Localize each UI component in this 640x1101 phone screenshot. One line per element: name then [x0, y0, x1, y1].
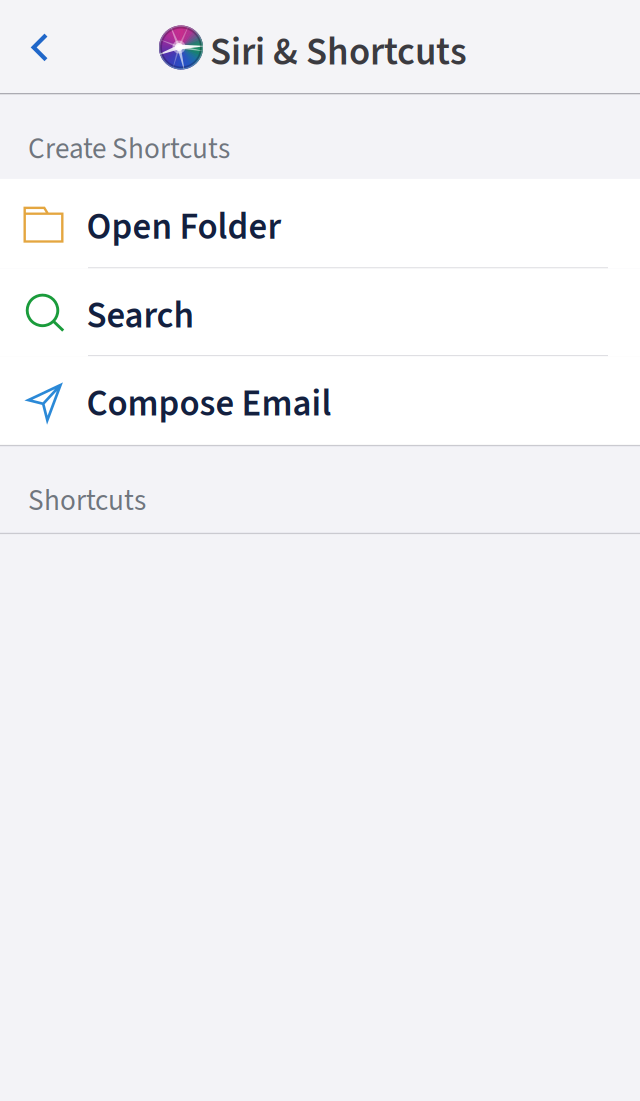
- button[interactable]: Search: [0, 268, 640, 356]
- button[interactable]: Compose Email: [0, 356, 640, 445]
- button[interactable]: Back: [0, 0, 77, 93]
- staticText: Compose Email: [86, 378, 331, 430]
- staticText: Open Folder: [86, 201, 281, 253]
- staticText: Shortcuts: [28, 480, 146, 522]
- staticText: Search: [86, 290, 194, 342]
- button[interactable]: Open Folder: [0, 179, 640, 268]
- staticText: Siri & Shortcuts: [210, 25, 467, 80]
- staticText: Create Shortcuts: [28, 128, 230, 170]
